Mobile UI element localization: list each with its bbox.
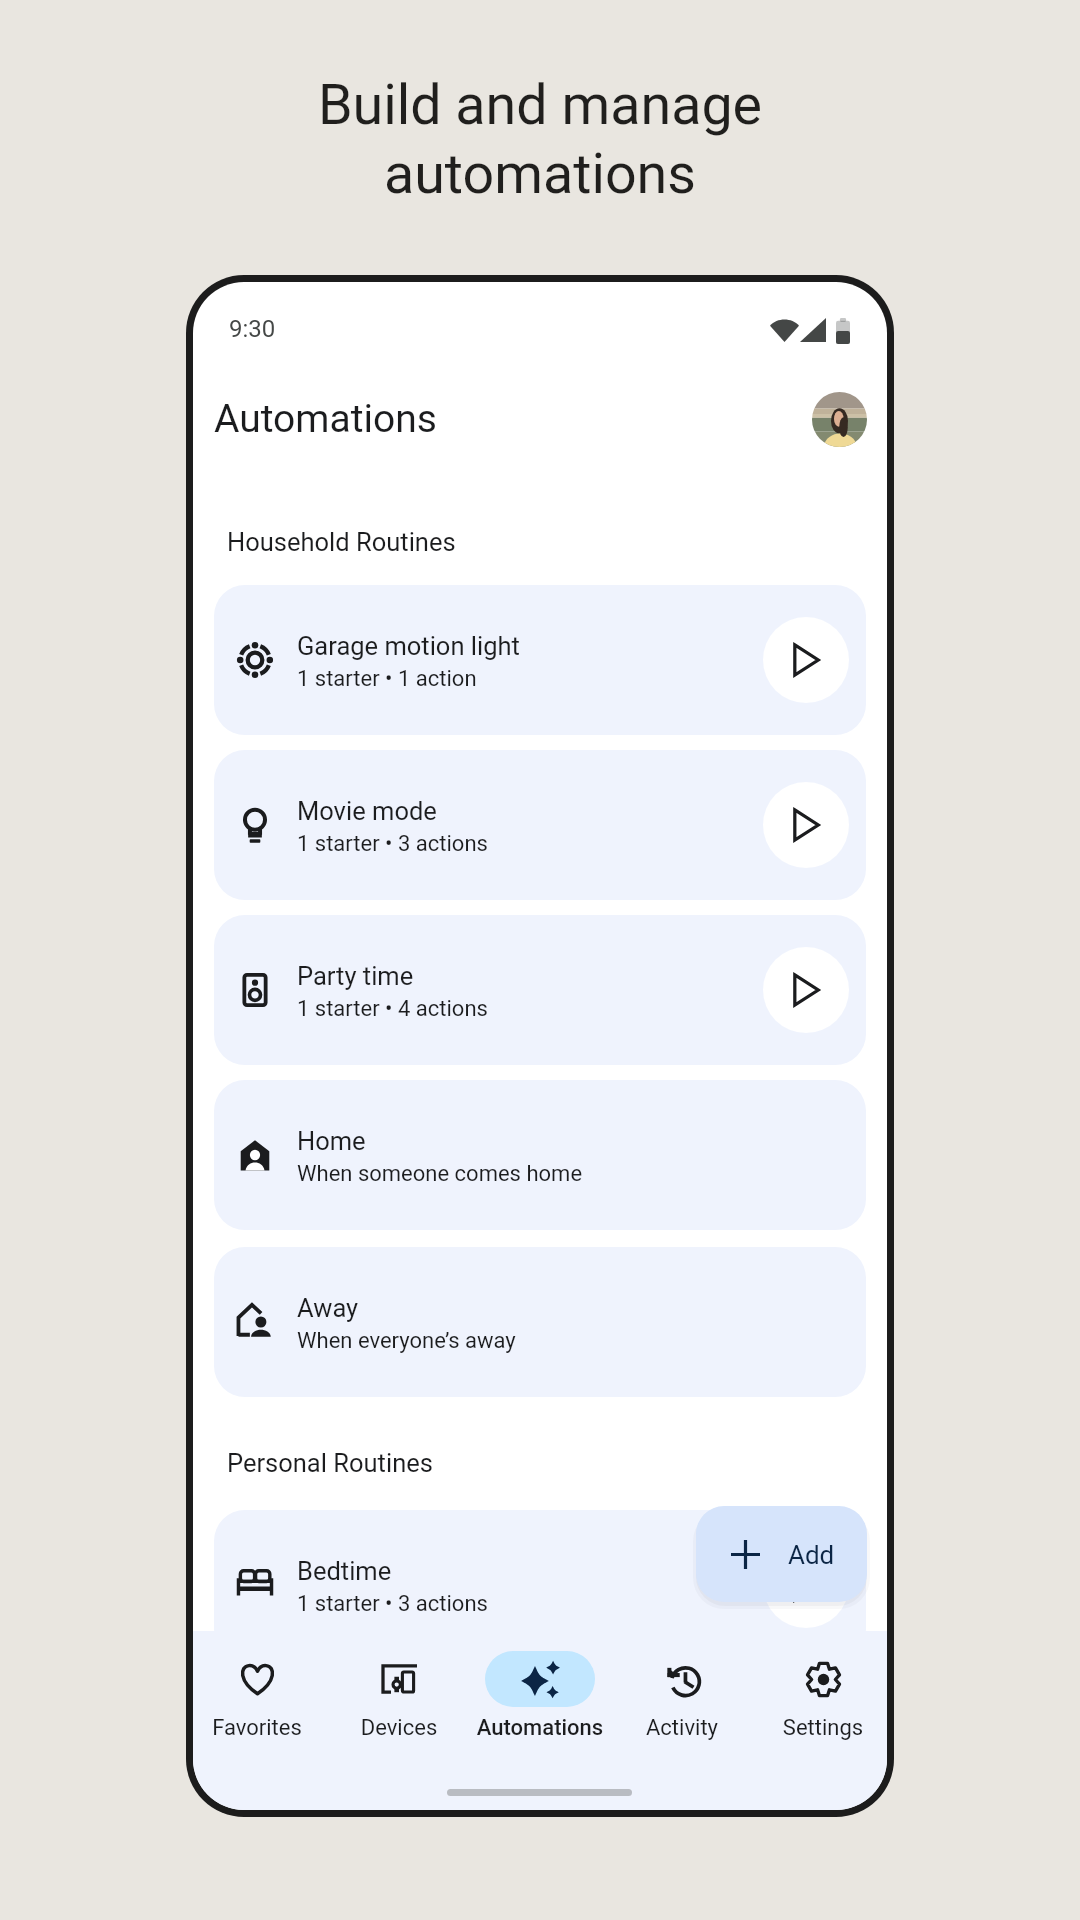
button[interactable]: Devices (329, 1642, 469, 1752)
staticText: Household Routines (227, 527, 456, 557)
staticText: Add (788, 1540, 835, 1570)
button[interactable]: Favorites (193, 1642, 327, 1752)
button[interactable]: Settings (753, 1642, 887, 1752)
button[interactable]: Bedtime (214, 1510, 866, 1660)
button[interactable]: Add (696, 1506, 867, 1602)
staticText: 1 starter • 3 actions (297, 831, 488, 857)
staticText: Away (297, 1293, 359, 1323)
button[interactable]: Play routine (763, 782, 849, 868)
button[interactable]: Play routine (763, 947, 849, 1033)
staticText: 1 starter • 1 action (297, 666, 477, 692)
staticText: Automations (470, 1715, 610, 1741)
staticText: 9:30 (229, 315, 276, 343)
staticText: Devices (329, 1715, 469, 1741)
staticText: When someone comes home (297, 1161, 583, 1187)
staticText: 1 starter • 3 actions (297, 1591, 488, 1617)
button[interactable]: Home (214, 1080, 866, 1230)
button[interactable]: Play routine (763, 1542, 849, 1628)
staticText: Automations (214, 396, 437, 442)
staticText: Garage motion light (297, 631, 520, 661)
button[interactable]: Garage motion light (214, 585, 866, 735)
staticText: Favorites (193, 1715, 327, 1741)
staticText: Bedtime (297, 1556, 392, 1586)
button[interactable]: Away (214, 1247, 866, 1397)
button[interactable]: Account (812, 392, 867, 447)
staticText: Activity (612, 1715, 752, 1741)
button[interactable]: Play routine (763, 617, 849, 703)
staticText: 1 starter • 4 actions (297, 996, 488, 1022)
staticText: Movie mode (297, 796, 437, 826)
button[interactable]: Movie mode (214, 750, 866, 900)
staticText: Settings (753, 1715, 887, 1741)
staticText: Build and manage automations (0, 72, 1080, 206)
button[interactable]: Activity (612, 1642, 752, 1752)
button[interactable]: Party time (214, 915, 866, 1065)
staticText: Personal Routines (227, 1448, 433, 1478)
button[interactable]: Automations (470, 1642, 610, 1752)
staticText: Party time (297, 961, 414, 991)
staticText: When everyone’s away (297, 1328, 516, 1354)
staticText: Home (297, 1126, 366, 1156)
